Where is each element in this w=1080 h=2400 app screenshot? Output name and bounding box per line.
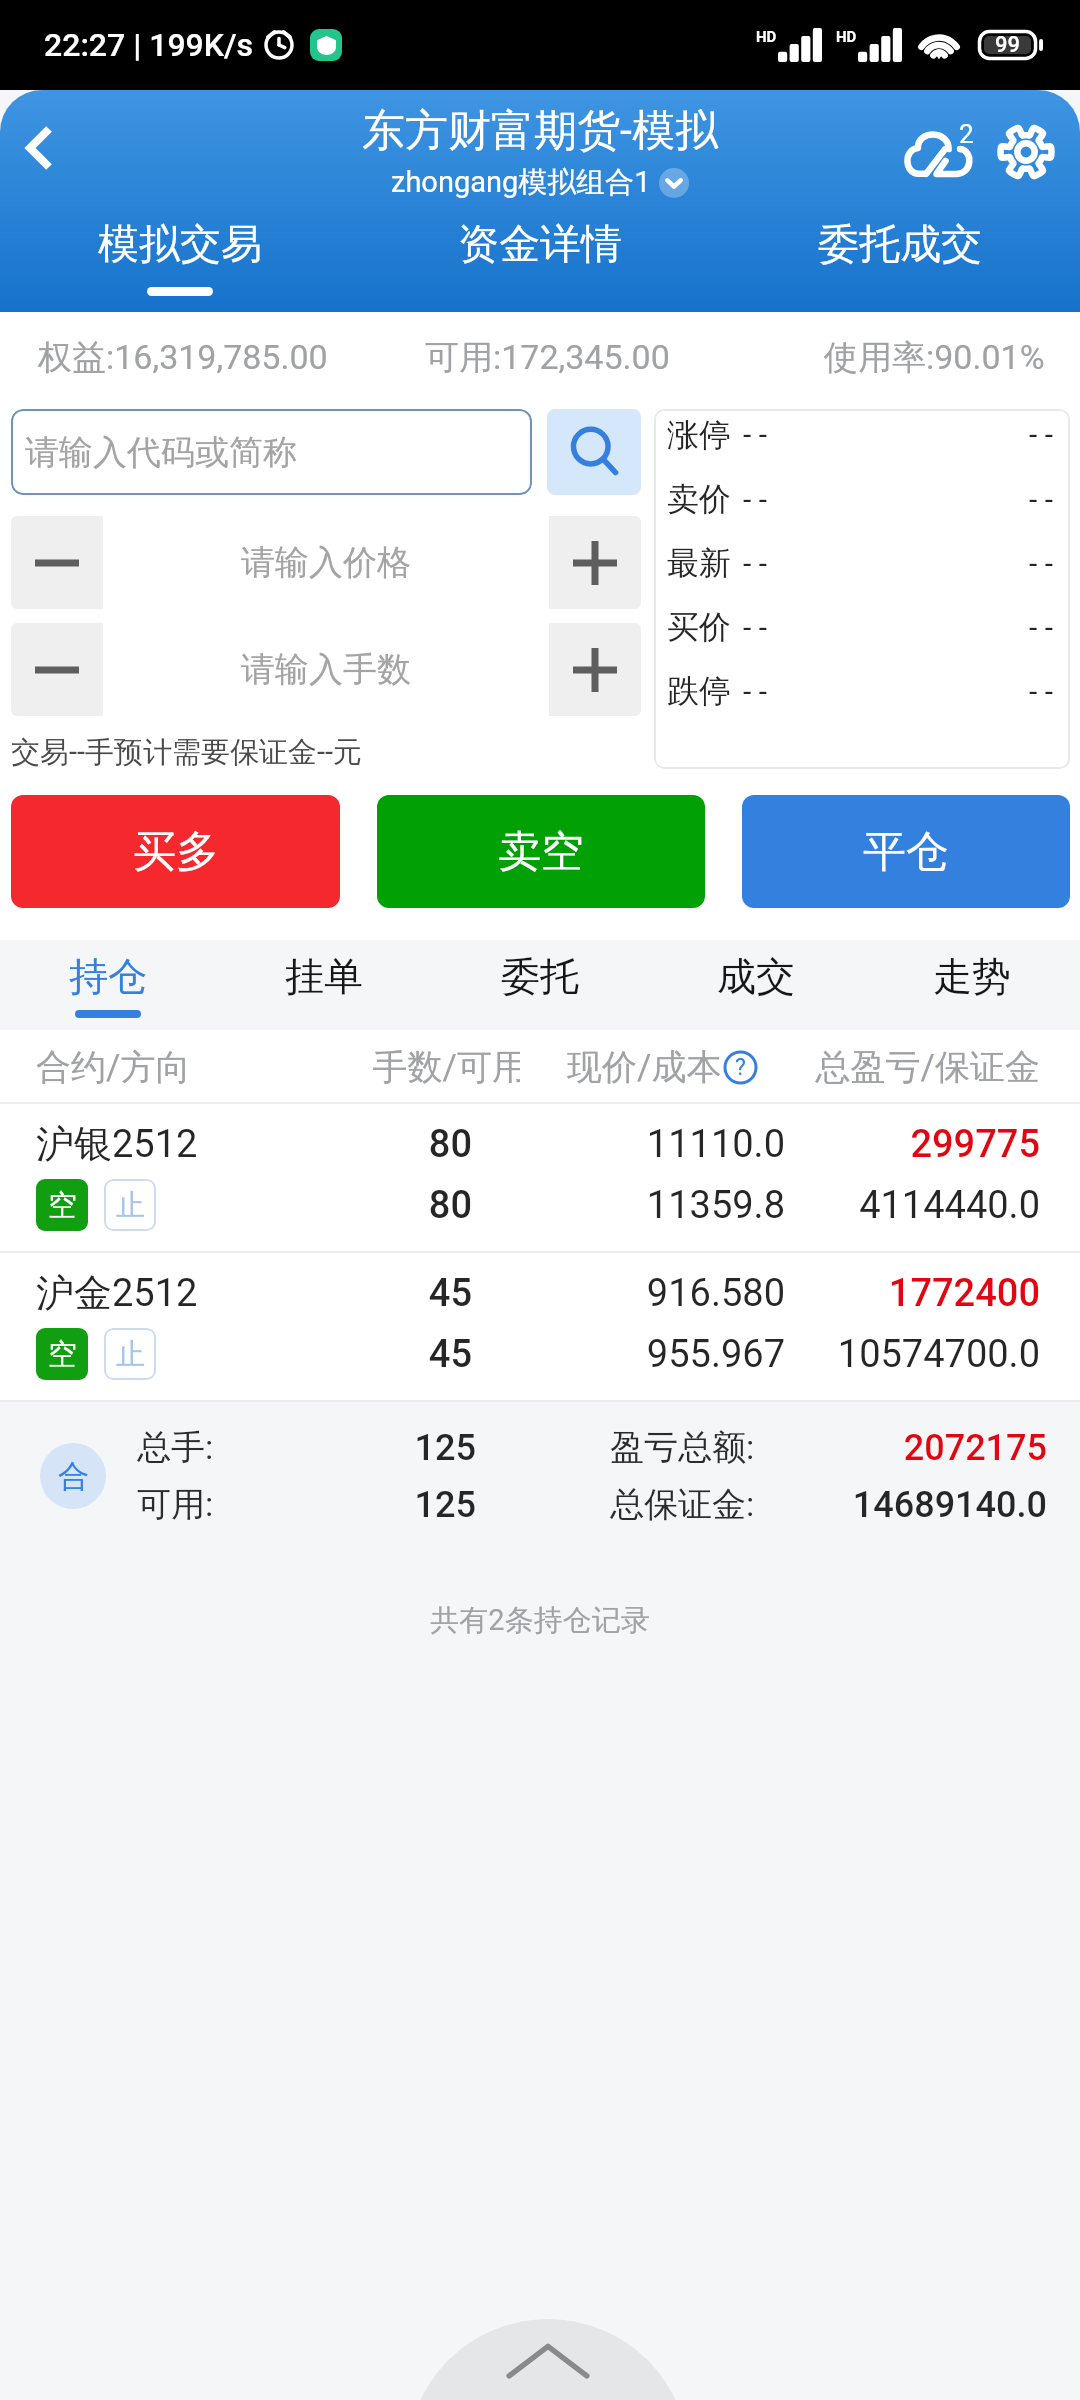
staticText: 合 (58, 1457, 89, 1496)
button[interactable]: 请输入代码或简称 (11, 409, 532, 495)
button[interactable]: 资金详情 (360, 202, 720, 312)
button[interactable]: Back (0, 109, 78, 187)
staticText: 止 (116, 1187, 145, 1224)
button[interactable]: 请输入价格 (103, 516, 549, 609)
staticText: 4114440.0 (785, 1183, 1040, 1228)
staticText: ? (735, 1054, 746, 1081)
staticText: 沪银2512 (36, 1120, 392, 1168)
staticText: 持仓 (69, 952, 147, 1001)
staticText: 2 (959, 119, 974, 149)
button[interactable]: Increase (549, 516, 641, 609)
button[interactable]: 止 (104, 1328, 156, 1380)
staticText: 11110.0 (472, 1122, 785, 1167)
button[interactable]: Search (547, 409, 641, 495)
button[interactable]: 模拟交易 (0, 202, 360, 312)
staticText: 平仓 (863, 825, 949, 879)
staticText: 80 (392, 1183, 472, 1228)
staticText: zhongang模拟组合1 (391, 164, 651, 201)
button[interactable]: 卖空 (377, 795, 705, 908)
staticText: - - (1029, 417, 1054, 452)
staticText: 1772400 (785, 1271, 1040, 1316)
staticText: 299775 (785, 1122, 1040, 1167)
staticText: 共有2条持仓记录 (0, 1602, 1080, 1639)
staticText: 手数/可用 (372, 1045, 520, 1089)
staticText: 总保证金: (610, 1483, 852, 1526)
staticText: - - (1029, 482, 1054, 517)
staticText: 止 (116, 1336, 145, 1373)
staticText: 空 (48, 1336, 77, 1373)
staticText: 委托成交 (818, 219, 982, 271)
staticText: 总手: (137, 1426, 257, 1469)
button[interactable]: 沪金2512 (0, 1253, 1080, 1402)
staticText: 14689140.0 (852, 1484, 1047, 1526)
staticText: 11359.8 (472, 1183, 785, 1228)
staticText: 涨停 (667, 415, 731, 455)
staticText: HD (756, 28, 777, 46)
staticText: 请输入代码或简称 (25, 431, 297, 474)
staticText: 模拟交易 (98, 219, 262, 271)
staticText: 东方财富期货-模拟 (362, 104, 718, 158)
staticText: 委托 (501, 952, 579, 1001)
button[interactable]: 止 (104, 1179, 156, 1231)
button[interactable]: 走势 (864, 940, 1080, 1030)
button[interactable]: 平仓 (742, 795, 1070, 908)
button[interactable]: 成交 (648, 940, 864, 1030)
staticText: 45 (392, 1332, 472, 1377)
staticText: 99 (995, 32, 1021, 58)
staticText: 买多 (133, 825, 219, 879)
staticText: 资金详情 (458, 219, 622, 271)
button[interactable]: Settings (982, 108, 1070, 196)
staticText: 22:27 | 199K/s (44, 26, 254, 64)
staticText: - - (743, 417, 768, 452)
staticText: - - (1029, 674, 1054, 709)
button[interactable]: 持仓 (0, 940, 216, 1030)
staticText: 使用率:90.01% (824, 336, 1045, 379)
button[interactable]: 委托 (432, 940, 648, 1030)
staticText: 955.967 (472, 1332, 785, 1377)
staticText: - - (1029, 546, 1054, 581)
staticText: - - (1029, 610, 1054, 645)
staticText: 交易--手预计需要保证金--元 (11, 734, 363, 771)
button[interactable]: 沪银2512 (0, 1104, 1080, 1253)
staticText: 权益:16,319,785.00 (38, 336, 328, 379)
staticText: 沪金2512 (36, 1269, 392, 1317)
staticText: 现价/成本 (567, 1045, 722, 1089)
staticText: 请输入手数 (241, 648, 411, 691)
button[interactable]: 挂单 (216, 940, 432, 1030)
staticText: 合约/方向 (36, 1045, 372, 1089)
button[interactable]: 请输入手数 (103, 623, 549, 716)
button[interactable]: Cloud account (894, 108, 982, 196)
staticText: 125 (257, 1484, 476, 1526)
staticText: 盈亏总额: (610, 1426, 903, 1469)
staticText: 空 (48, 1187, 77, 1224)
button[interactable]: Increase (549, 623, 641, 716)
staticText: 916.580 (472, 1271, 785, 1316)
staticText: 80 (392, 1122, 472, 1167)
staticText: 挂单 (285, 952, 363, 1001)
button[interactable]: zhongang模拟组合1 (391, 164, 689, 201)
button[interactable]: 委托成交 (720, 202, 1080, 312)
button[interactable]: Expand panel (407, 2319, 689, 2400)
staticText: 跌停 (667, 671, 731, 711)
button[interactable]: Decrease (11, 623, 103, 716)
staticText: - - (743, 482, 768, 517)
staticText: 125 (257, 1427, 476, 1469)
button[interactable]: 买多 (11, 795, 340, 908)
staticText: 可用: (137, 1483, 257, 1526)
staticText: HD (836, 28, 857, 46)
staticText: - - (743, 546, 768, 581)
staticText: 卖空 (498, 825, 584, 879)
staticText: 买价 (667, 607, 731, 647)
button[interactable]: Decrease (11, 516, 103, 609)
staticText: 可用:172,345.00 (425, 336, 670, 379)
staticText: - - (743, 674, 768, 709)
staticText: 2072175 (903, 1427, 1047, 1469)
staticText: 最新 (667, 543, 731, 583)
staticText: 请输入价格 (241, 541, 411, 584)
staticText: 总盈亏/保证金 (815, 1045, 1040, 1089)
staticText: 走势 (933, 952, 1011, 1001)
staticText: 45 (392, 1271, 472, 1316)
staticText: 10574700.0 (785, 1332, 1040, 1377)
staticText: 成交 (717, 952, 795, 1001)
staticText: - - (743, 610, 768, 645)
